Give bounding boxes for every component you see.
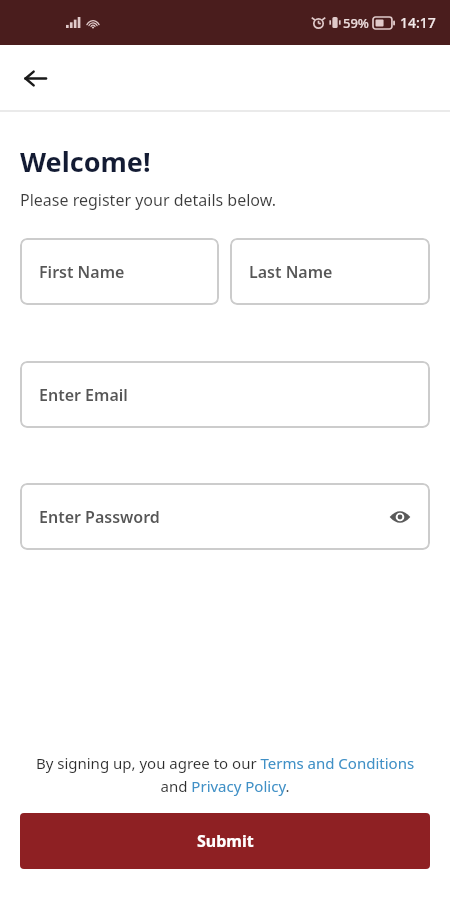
button[interactable]: Back — [13, 56, 57, 100]
button[interactable]: Enter Email — [20, 361, 430, 428]
staticText: Submit — [197, 830, 254, 852]
staticText: Last Name — [249, 261, 333, 283]
staticText: Enter Email — [39, 384, 128, 406]
button[interactable]: Enter Password — [20, 483, 430, 550]
staticText: First Name — [39, 261, 125, 283]
button[interactable]: Last Name — [230, 238, 430, 305]
staticText: By signing up, you agree to our Terms an… — [32, 753, 418, 796]
staticText: 59% — [343, 14, 369, 32]
button[interactable]: Submit — [20, 813, 430, 869]
staticText: Welcome! — [20, 143, 151, 180]
staticText: Please register your details below. — [20, 189, 276, 211]
button[interactable]: Show password — [383, 500, 417, 534]
button[interactable]: By signing up, you agree to our Terms an… — [32, 753, 418, 796]
staticText: Enter Password — [39, 506, 160, 528]
button[interactable]: First Name — [20, 238, 219, 305]
staticText: 14:17 — [400, 13, 436, 32]
